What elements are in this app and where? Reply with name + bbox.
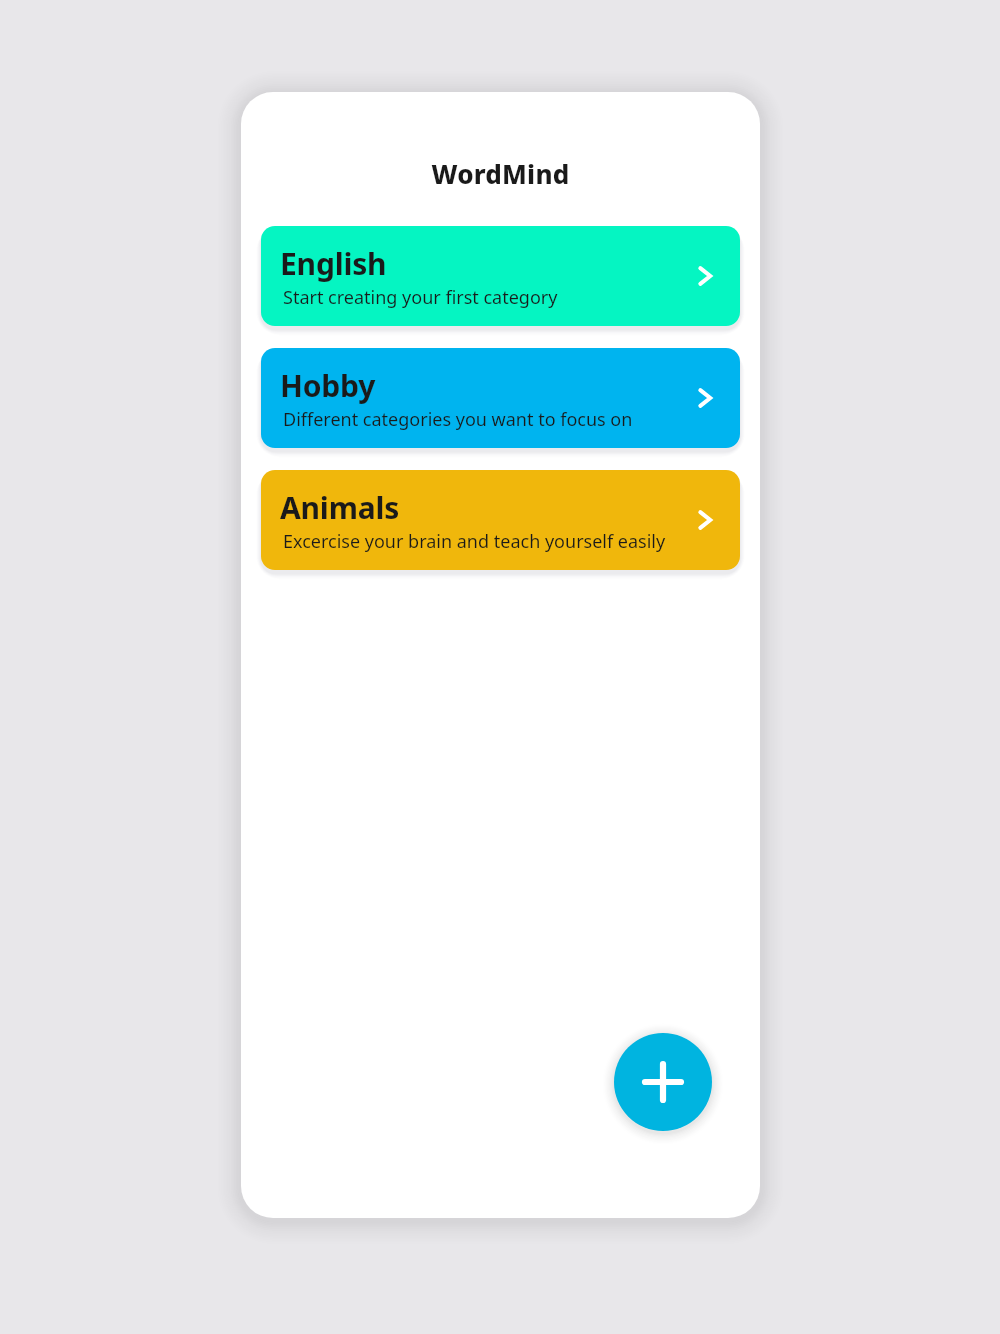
staticText: WordMind (241, 156, 760, 191)
button[interactable]: Animals (261, 470, 740, 570)
button[interactable]: English (261, 226, 740, 326)
button[interactable]: Hobby (261, 348, 740, 448)
staticText: Animals (280, 487, 400, 528)
staticText: Different categories you want to focus o… (283, 407, 633, 432)
staticText: English (280, 243, 387, 284)
button[interactable]: Add category (614, 1033, 712, 1131)
staticText: Start creating your first category (283, 285, 558, 310)
staticText: Hobby (280, 365, 376, 406)
staticText: Excercise your brain and teach yourself … (283, 529, 666, 554)
